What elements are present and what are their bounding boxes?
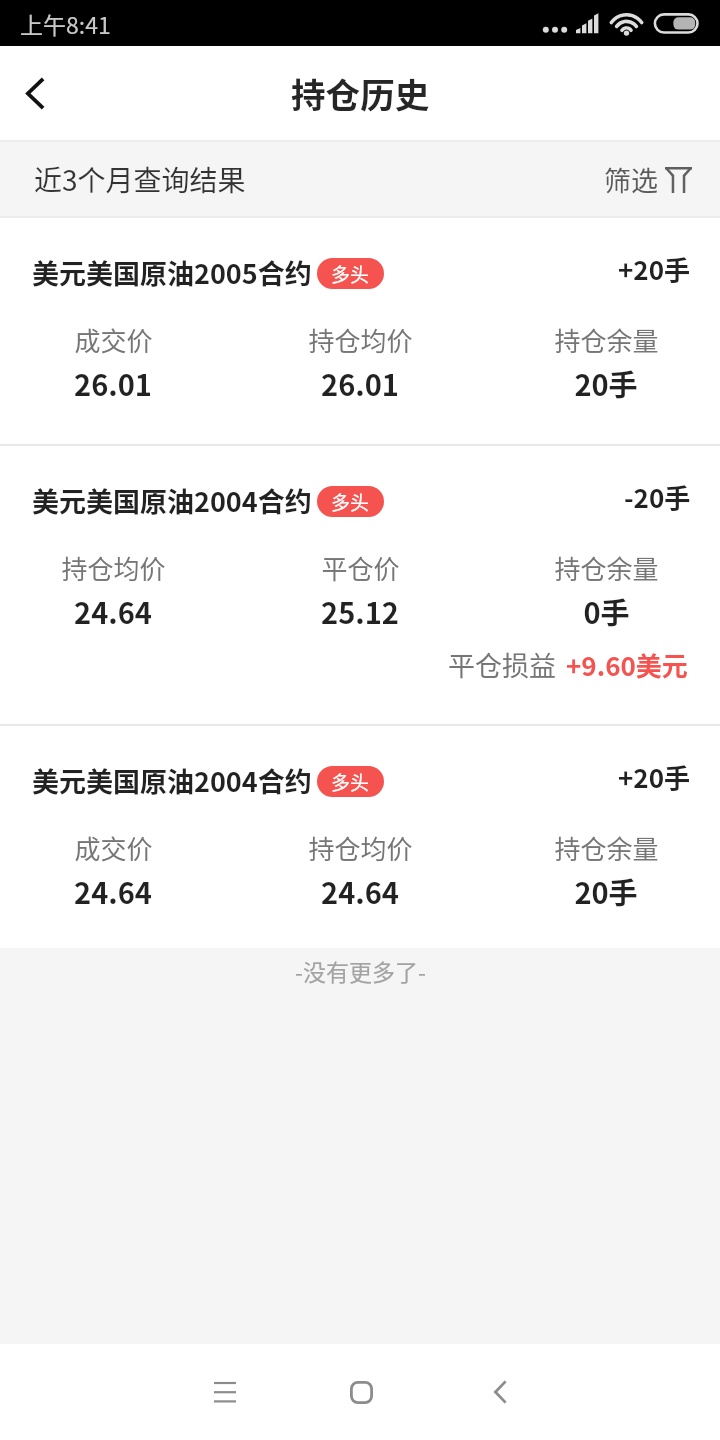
button[interactable]: Back [456, 1348, 544, 1436]
staticText: 持仓均价 [308, 321, 413, 359]
staticText: +20手 [618, 758, 691, 796]
staticText: 平仓损益 [448, 645, 556, 684]
staticText: 成交价 [74, 829, 153, 867]
staticText: 平仓价 [321, 549, 400, 587]
staticText: +9.60美元 [566, 646, 688, 684]
staticText: 上午8:41 [20, 7, 111, 40]
staticText: -20手 [624, 478, 691, 516]
staticText: 近3个月查询结果 [34, 159, 246, 200]
button[interactable]: 美元美国原油2005合约 [0, 218, 720, 444]
staticText: 持仓余量 [554, 321, 659, 359]
staticText: 持仓余量 [554, 829, 659, 867]
staticText: 持仓历史 [291, 68, 430, 118]
button[interactable]: Back [0, 46, 70, 140]
staticText: 0手 [583, 590, 630, 632]
button[interactable]: 美元美国原油2004合约 [0, 446, 720, 724]
staticText: 24.64 [74, 590, 152, 632]
staticText: 20手 [574, 870, 638, 912]
staticText: 筛选 [604, 160, 658, 199]
staticText: 20手 [574, 362, 638, 404]
staticText: -没有更多了- [295, 954, 426, 987]
button[interactable]: Recent apps [181, 1348, 269, 1436]
staticText: 26.01 [321, 362, 399, 404]
staticText: 多头 [331, 768, 370, 796]
staticText: 美元美国原油2005合约 [32, 253, 312, 292]
staticText: 持仓均价 [61, 549, 166, 587]
button[interactable]: Home [317, 1348, 405, 1436]
staticText: +20手 [618, 250, 691, 288]
staticText: 26.01 [74, 362, 152, 404]
staticText: 25.12 [321, 590, 399, 632]
button[interactable]: 美元美国原油2004合约 [0, 726, 720, 948]
staticText: 24.64 [74, 870, 152, 912]
staticText: 持仓均价 [308, 829, 413, 867]
staticText: 持仓余量 [554, 549, 659, 587]
staticText: 美元美国原油2004合约 [32, 481, 312, 520]
button[interactable]: 筛选 Filter [580, 146, 720, 213]
staticText: 24.64 [321, 870, 399, 912]
staticText: 多头 [331, 260, 370, 288]
staticText: 成交价 [74, 321, 153, 359]
staticText: 美元美国原油2004合约 [32, 761, 312, 800]
staticText: 多头 [331, 488, 370, 516]
